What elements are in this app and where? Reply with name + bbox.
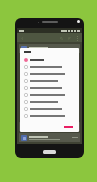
button[interactable] [24,112,75,119]
button[interactable]: Home [43,150,56,154]
button[interactable] [24,98,75,105]
button[interactable] [24,84,75,91]
button[interactable] [24,70,75,77]
button[interactable]: Back [19,35,25,41]
button[interactable] [24,63,75,70]
button[interactable]: Cancel [62,125,75,129]
button[interactable] [24,56,75,63]
button[interactable]: Search [58,35,64,41]
button[interactable]: Sort [66,35,72,41]
button[interactable] [19,122,80,131]
button[interactable] [19,44,80,53]
button[interactable] [24,105,75,112]
button[interactable]: More options [74,35,80,41]
button[interactable] [19,133,80,142]
button[interactable] [24,77,75,84]
button[interactable] [24,91,75,98]
